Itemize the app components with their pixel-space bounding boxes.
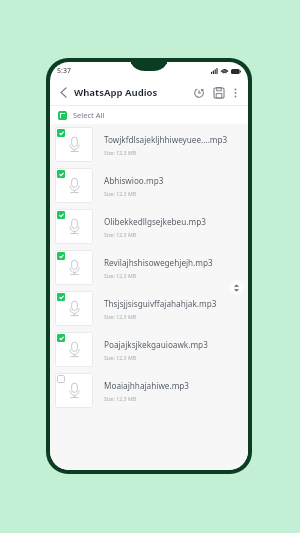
button[interactable]: More options [228, 85, 243, 100]
staticText: 5:37 [57, 66, 71, 76]
staticText: Abhiswioo.mp3 [104, 175, 164, 186]
staticText: Towjkfdlsajekljhhiweyuee....mp3 [104, 134, 228, 145]
button[interactable]: Back [55, 84, 71, 100]
staticText: Size: 12.3 MB [104, 231, 137, 238]
button[interactable]: Fast scroll [229, 280, 244, 295]
button[interactable]: Olibekkedllgsejkebeu.mp3 [50, 206, 248, 247]
staticText: Size: 12.3 MB [104, 354, 137, 361]
button[interactable]: Save [210, 84, 227, 101]
staticText: Revilajhshisowegehjejh.mp3 [104, 257, 213, 268]
button[interactable]: Revilajhshisowegehjejh.mp3 [50, 247, 248, 288]
button[interactable]: Select All [50, 106, 248, 124]
staticText: Olibekkedllgsejkebeu.mp3 [104, 216, 206, 227]
staticText: WhatsApp Audios [74, 86, 158, 99]
staticText: Thsjsjjsisguivffajahahjak.mp3 [104, 298, 217, 309]
staticText: Size: 12.3 MB [104, 313, 137, 320]
button[interactable]: Poajajksjkekgauioawk.mp3 [50, 329, 248, 370]
button[interactable]: Towjkfdlsajekljhhiweyuee....mp3 [50, 124, 248, 165]
staticText: Size: 12.3 MB [104, 395, 137, 402]
staticText: Size: 12.3 MB [104, 190, 137, 197]
button[interactable]: Moaiajhhajahiwe.mp3 [50, 370, 248, 411]
staticText: Moaiajhhajahiwe.mp3 [104, 380, 190, 391]
button[interactable]: History [190, 84, 207, 101]
staticText: Poajajksjkekgauioawk.mp3 [104, 339, 208, 350]
staticText: Select All [73, 110, 105, 120]
staticText: Size: 12.3 MB [104, 272, 137, 279]
button[interactable]: Thsjsjjsisguivffajahahjak.mp3 [50, 288, 248, 329]
staticText: Size: 12.3 MB [104, 149, 137, 156]
button[interactable]: Abhiswioo.mp3 [50, 165, 248, 206]
